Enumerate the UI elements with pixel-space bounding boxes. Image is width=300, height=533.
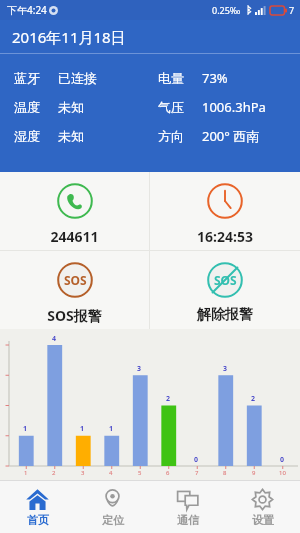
staticText: 电量 [158,70,184,86]
button[interactable]: Messages [150,481,225,533]
button[interactable]: Call [0,172,149,250]
staticText: 1 [80,424,85,434]
staticText: 0 [280,455,285,465]
staticText: 2016年11月18日 [12,27,126,47]
staticText: 湿度 [14,128,40,144]
staticText: 通信 [177,513,199,527]
staticText: 10 [279,469,286,477]
staticText: 解除报警 [197,306,253,324]
staticText: SOS报警 [47,306,102,325]
staticText: 0.25‰ [212,4,241,16]
staticText: 3 [81,469,85,477]
staticText: 200° 西南 [202,127,260,145]
other: Time [207,183,243,219]
other: Call [57,183,93,219]
staticText: 2 [251,394,256,404]
staticText: 未知 [58,128,84,144]
staticText: SOS [214,272,237,288]
staticText: 5 [138,469,142,477]
staticText: SOS [64,272,87,288]
staticText: 73% [202,69,228,87]
staticText: 蓝牙 [14,70,40,86]
button[interactable]: Cancel alarm [150,251,300,329]
staticText: 1006.3hPa [202,98,266,116]
staticText: 温度 [14,99,40,115]
staticText: 244611 [50,227,99,246]
staticText: 未知 [58,99,84,115]
staticText: 6 [166,469,170,477]
staticText: 首页 [27,513,49,527]
other: SOS alarm [57,262,93,298]
staticText: 1 [23,424,28,434]
staticText: 1 [24,469,28,477]
staticText: 4 [52,334,57,344]
staticText: 9 [252,469,256,477]
staticText: 0 [194,455,199,465]
staticText: 8 [223,469,227,477]
staticText: 气压 [158,99,184,115]
button[interactable]: Location [75,481,150,533]
staticText: 1 [109,424,114,434]
staticText: 3 [223,364,228,374]
staticText: 16:24:53 [197,227,253,246]
staticText: 4 [109,469,113,477]
button[interactable]: Settings [225,481,300,533]
other: Cancel alarm [207,262,243,298]
staticText: 2 [166,394,171,404]
button[interactable]: Home [0,481,75,533]
staticText: 2 [52,469,56,477]
staticText: 3 [137,364,142,374]
staticText: 7 [289,4,295,16]
staticText: 7 [195,469,199,477]
button[interactable]: SOS alarm [0,251,149,329]
staticText: 设置 [252,513,274,527]
staticText: 已连接 [58,70,97,86]
staticText: 下午4:24 [7,3,47,17]
staticText: 定位 [102,513,124,527]
staticText: 方向 [158,128,184,144]
button[interactable]: Time [150,172,300,250]
